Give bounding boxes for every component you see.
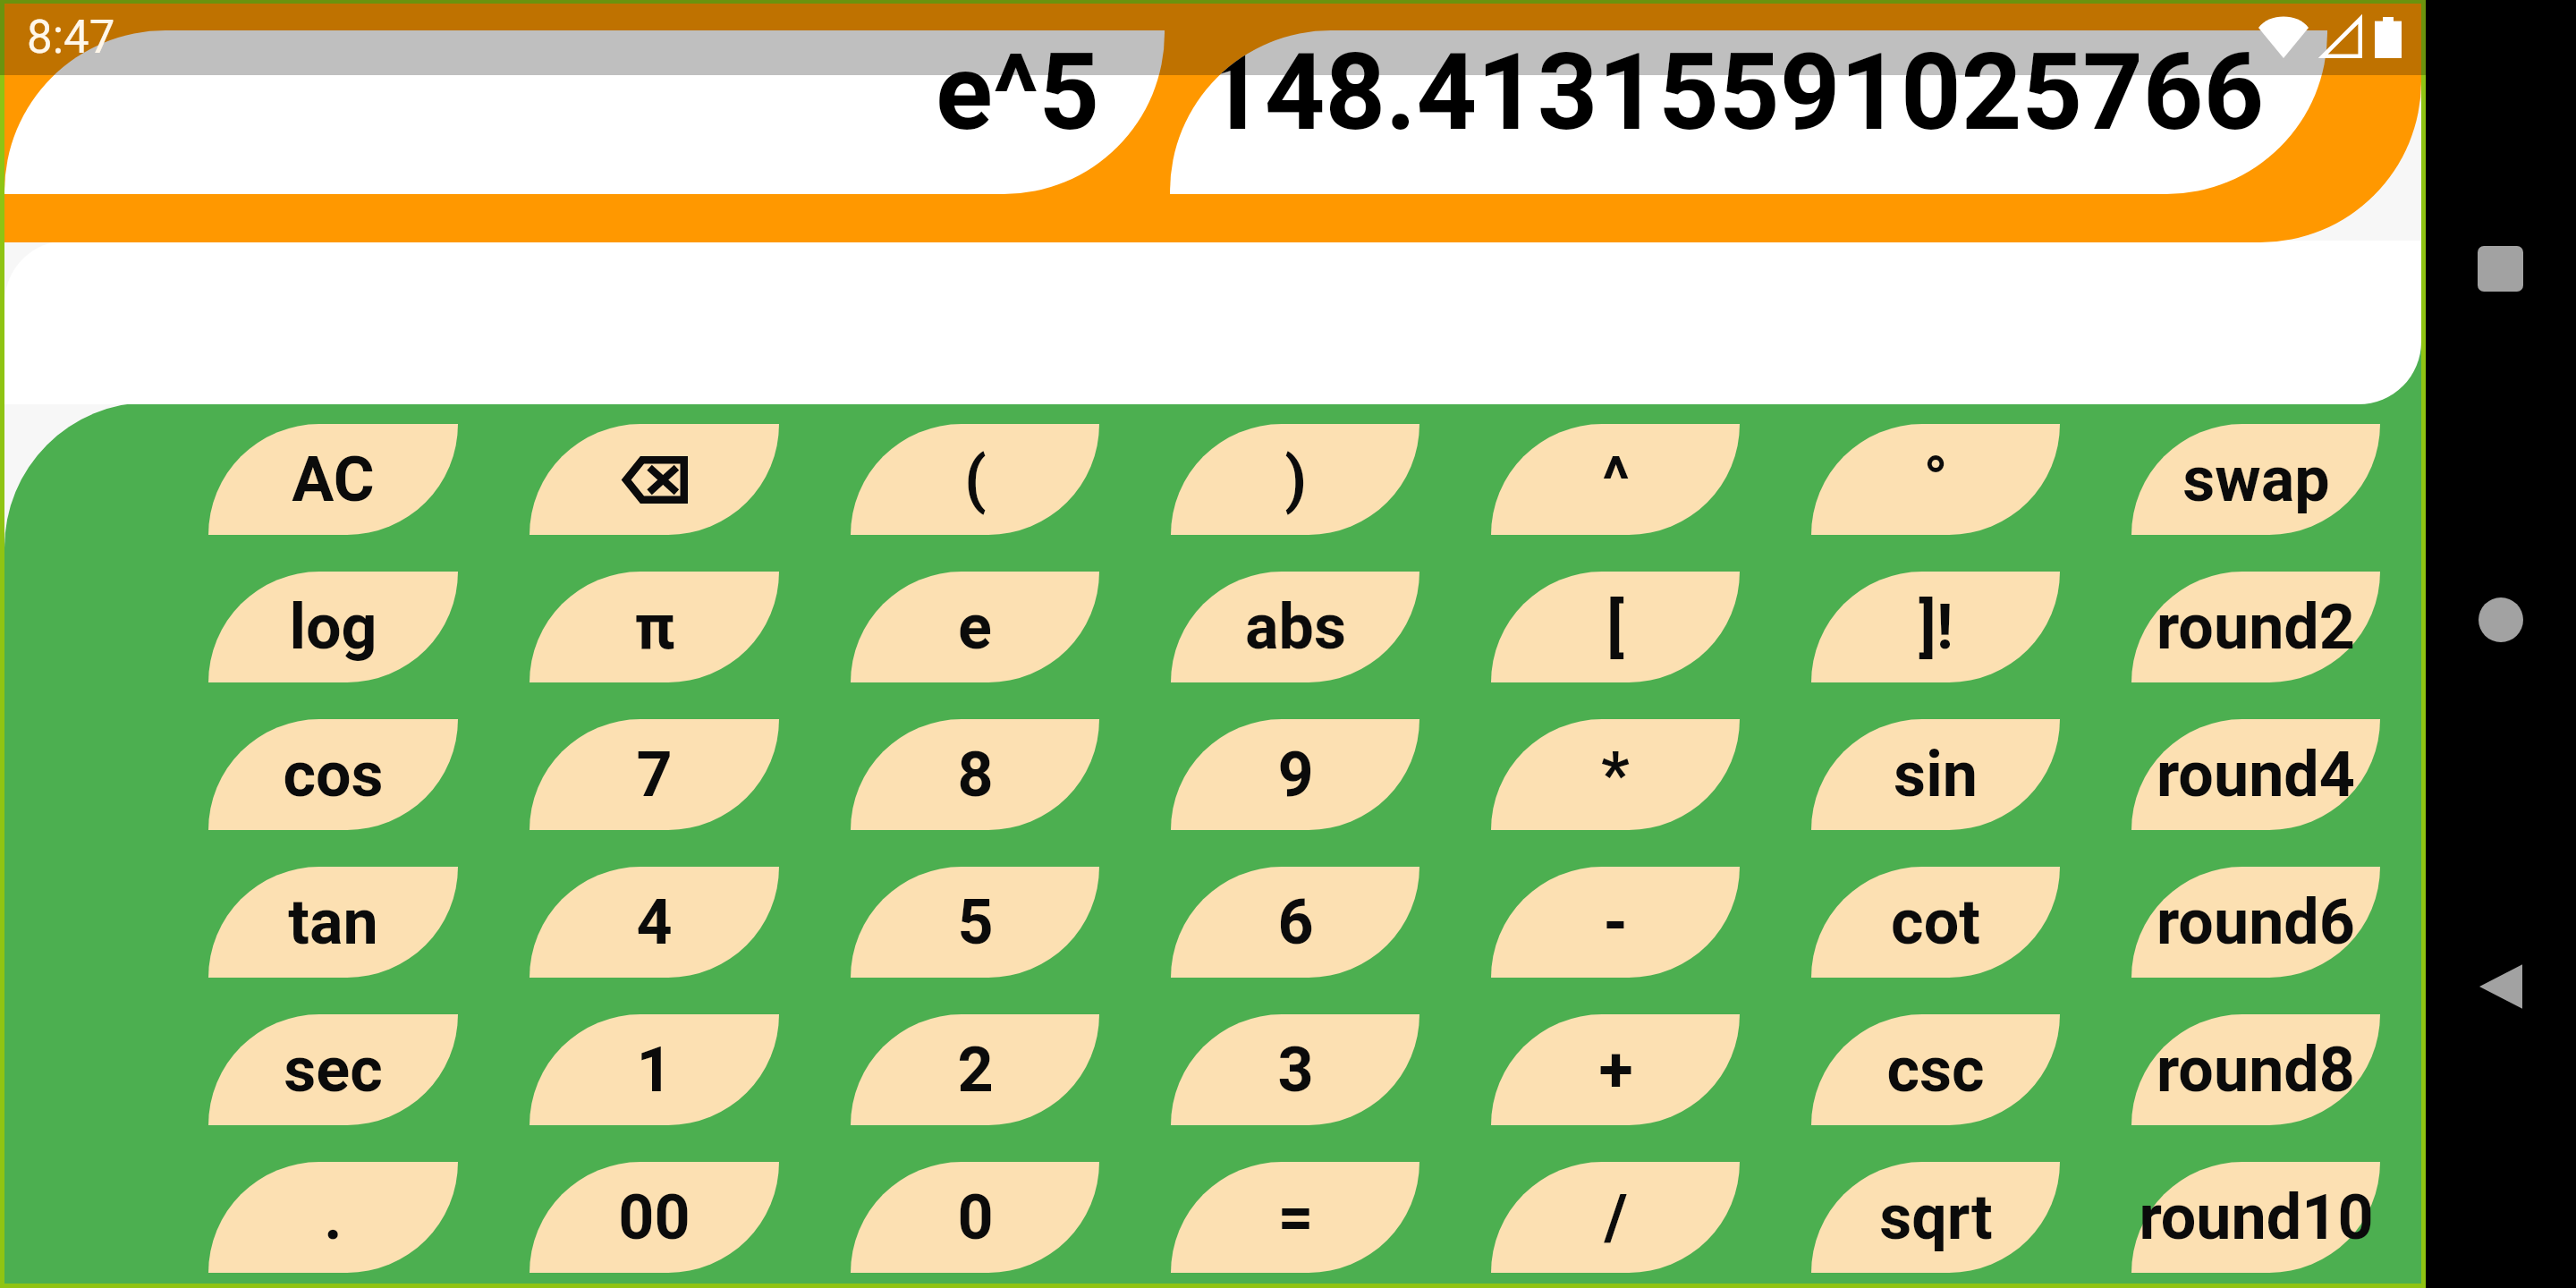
- button[interactable]: swap: [2131, 424, 2380, 535]
- button[interactable]: 3: [1171, 1014, 1419, 1125]
- button[interactable]: [4, 241, 2421, 404]
- button[interactable]: e: [851, 572, 1099, 682]
- staticText: 6: [1277, 885, 1314, 959]
- staticText: 9: [1277, 738, 1314, 811]
- staticText: =: [1277, 1181, 1314, 1254]
- staticText: 148.41315591025766: [1204, 31, 2265, 155]
- other: Battery: [2375, 17, 2402, 58]
- button[interactable]: Home: [2479, 597, 2523, 642]
- staticText: AC: [292, 443, 375, 516]
- staticText: log: [289, 590, 377, 664]
- staticText: ]!: [1919, 590, 1953, 664]
- staticText: swap: [2182, 443, 2330, 516]
- staticText: +: [1598, 1033, 1633, 1106]
- button[interactable]: 7: [530, 719, 779, 830]
- staticText: °: [1923, 443, 1948, 516]
- button[interactable]: sqrt: [1811, 1162, 2060, 1273]
- staticText: csc: [1886, 1033, 1985, 1106]
- staticText: round6: [2157, 885, 2355, 959]
- button[interactable]: round10: [2131, 1162, 2380, 1273]
- button[interactable]: 00: [530, 1162, 779, 1273]
- button[interactable]: round6: [2131, 867, 2380, 978]
- button[interactable]: 4: [530, 867, 779, 978]
- button[interactable]: log: [208, 572, 458, 682]
- staticText: ): [1284, 443, 1307, 516]
- button[interactable]: 2: [851, 1014, 1099, 1125]
- staticText: tan: [288, 885, 378, 959]
- staticText: 7: [636, 738, 673, 811]
- button[interactable]: Recent apps: [2478, 246, 2523, 292]
- staticText: round4: [2157, 738, 2355, 811]
- other: Backspace: [622, 456, 688, 504]
- button[interactable]: =: [1171, 1162, 1419, 1273]
- staticText: 1: [636, 1033, 673, 1106]
- button[interactable]: Backspace: [530, 424, 779, 535]
- button[interactable]: e^5: [4, 30, 1165, 194]
- button[interactable]: 6: [1171, 867, 1419, 978]
- staticText: 4: [636, 885, 673, 959]
- button[interactable]: +: [1491, 1014, 1740, 1125]
- staticText: round8: [2157, 1033, 2355, 1106]
- staticText: (: [964, 443, 987, 516]
- button[interactable]: *: [1491, 719, 1740, 830]
- staticText: /: [1604, 1181, 1628, 1254]
- staticText: 00: [618, 1181, 691, 1254]
- button[interactable]: /: [1491, 1162, 1740, 1273]
- button[interactable]: cos: [208, 719, 458, 830]
- staticText: sec: [284, 1033, 383, 1106]
- staticText: round2: [2157, 590, 2355, 664]
- button[interactable]: tan: [208, 867, 458, 978]
- button[interactable]: ^: [1491, 424, 1740, 535]
- button[interactable]: sin: [1811, 719, 2060, 830]
- button[interactable]: π: [530, 572, 779, 682]
- staticText: cot: [1891, 885, 1980, 959]
- button[interactable]: (: [851, 424, 1099, 535]
- staticText: .: [324, 1181, 343, 1254]
- button[interactable]: round2: [2131, 572, 2380, 682]
- staticText: 0: [957, 1181, 994, 1254]
- staticText: 3: [1277, 1033, 1314, 1106]
- button[interactable]: 148.41315591025766: [1170, 30, 2327, 194]
- button[interactable]: 0: [851, 1162, 1099, 1273]
- button[interactable]: 8: [851, 719, 1099, 830]
- staticText: ^: [1602, 443, 1630, 516]
- staticText: 2: [957, 1033, 994, 1106]
- staticText: 5: [957, 885, 994, 959]
- other: Wi-Fi: [2258, 17, 2309, 58]
- button[interactable]: csc: [1811, 1014, 2060, 1125]
- button[interactable]: AC: [208, 424, 458, 535]
- staticText: sqrt: [1879, 1181, 1993, 1254]
- staticText: -: [1603, 885, 1628, 959]
- button[interactable]: 5: [851, 867, 1099, 978]
- staticText: 8: [957, 738, 994, 811]
- button[interactable]: .: [208, 1162, 458, 1273]
- staticText: sin: [1894, 738, 1978, 811]
- staticText: 8:47: [27, 11, 115, 64]
- button[interactable]: abs: [1171, 572, 1419, 682]
- button[interactable]: [: [1491, 572, 1740, 682]
- button[interactable]: ): [1171, 424, 1419, 535]
- button[interactable]: 1: [530, 1014, 779, 1125]
- staticText: e^5: [936, 31, 1100, 155]
- staticText: e: [958, 590, 992, 664]
- button[interactable]: -: [1491, 867, 1740, 978]
- button[interactable]: sec: [208, 1014, 458, 1125]
- staticText: [: [1606, 590, 1624, 664]
- button[interactable]: 9: [1171, 719, 1419, 830]
- staticText: abs: [1245, 590, 1346, 664]
- staticText: round10: [2139, 1181, 2374, 1254]
- button[interactable]: round4: [2131, 719, 2380, 830]
- staticText: cos: [283, 738, 384, 811]
- button[interactable]: °: [1811, 424, 2060, 535]
- other: Mobile signal: [2321, 17, 2362, 58]
- staticText: *: [1601, 738, 1630, 811]
- button[interactable]: round8: [2131, 1014, 2380, 1125]
- button[interactable]: cot: [1811, 867, 2060, 978]
- button[interactable]: Back: [2479, 962, 2522, 1011]
- button[interactable]: ]!: [1811, 572, 2060, 682]
- staticText: π: [634, 590, 675, 664]
